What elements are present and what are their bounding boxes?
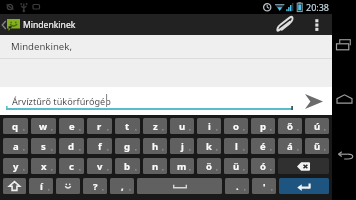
button[interactable]: ú	[305, 118, 329, 134]
staticText: z	[153, 120, 158, 133]
staticText: ?	[93, 180, 98, 193]
button[interactable]	[56, 178, 80, 194]
staticText: v	[97, 160, 103, 173]
button[interactable]: g	[115, 138, 140, 154]
button[interactable]: q	[3, 118, 28, 134]
button[interactable]: v	[87, 158, 112, 174]
button[interactable]: Back	[333, 144, 355, 166]
button[interactable]: .	[225, 178, 249, 194]
button[interactable]: í	[29, 178, 53, 194]
button[interactable]: c	[59, 158, 84, 174]
staticText: é	[260, 140, 266, 153]
staticText: y	[13, 160, 19, 173]
staticText: c	[69, 160, 74, 173]
button[interactable]: t	[115, 118, 140, 134]
button[interactable]: '	[252, 178, 276, 194]
staticText: q	[12, 120, 19, 133]
staticText: w	[39, 120, 48, 133]
button[interactable]: m	[170, 158, 194, 174]
button[interactable]: k	[197, 138, 221, 154]
staticText: ú	[314, 120, 321, 133]
staticText: f	[98, 140, 102, 153]
staticText: '	[263, 180, 266, 193]
button[interactable]: s	[31, 138, 56, 154]
button[interactable]	[137, 178, 222, 194]
button[interactable]: ,	[110, 178, 134, 194]
button[interactable]	[3, 178, 26, 194]
button[interactable]: e	[59, 118, 84, 134]
staticText: t	[125, 120, 130, 133]
staticText: .	[236, 180, 239, 193]
staticText: ,	[121, 180, 124, 193]
staticText: ü	[233, 160, 240, 173]
staticText: á	[287, 140, 293, 153]
staticText: 20:38	[306, 1, 330, 13]
button[interactable]: ó	[251, 158, 275, 174]
button[interactable]	[279, 178, 329, 194]
staticText: h	[152, 140, 159, 153]
staticText: r	[97, 120, 102, 133]
button[interactable]: a	[3, 138, 28, 154]
button[interactable]: h	[143, 138, 167, 154]
button[interactable]: j	[170, 138, 194, 154]
staticText: Mindenkinek	[23, 19, 76, 31]
staticText: ű	[314, 140, 321, 153]
button[interactable]: r	[87, 118, 112, 134]
button[interactable]: ű	[305, 138, 329, 154]
staticText: b	[124, 160, 131, 173]
staticText: u	[179, 120, 186, 133]
staticText: l	[235, 140, 238, 153]
staticText: e	[69, 120, 75, 133]
button[interactable]: w	[31, 118, 56, 134]
button[interactable]: o	[224, 118, 248, 134]
button[interactable]: Recent apps	[333, 34, 355, 56]
staticText: í	[40, 180, 43, 193]
button[interactable]: d	[59, 138, 84, 154]
button[interactable]: b	[115, 158, 140, 174]
button[interactable]: Home	[333, 88, 355, 110]
staticText: Árvíztűrő tükörfúrógép	[12, 95, 111, 107]
staticText: x	[41, 160, 47, 173]
staticText: Mindenkinek,	[11, 40, 72, 53]
button[interactable]: i	[197, 118, 221, 134]
staticText: s	[41, 140, 46, 153]
button[interactable]: More options	[301, 14, 332, 35]
staticText: m	[177, 160, 187, 173]
button[interactable]: y	[3, 158, 28, 174]
button[interactable]: ü	[224, 158, 248, 174]
staticText: k	[206, 140, 212, 153]
button[interactable]: á	[278, 138, 302, 154]
staticText: ö	[206, 160, 212, 173]
button[interactable]: x	[31, 158, 56, 174]
staticText: ó	[260, 160, 266, 173]
staticText: n	[152, 160, 159, 173]
staticText: g	[124, 140, 131, 153]
button[interactable]: Mindenkinek	[0, 14, 82, 35]
button[interactable]: l	[224, 138, 248, 154]
staticText: ő	[287, 120, 293, 133]
staticText: j	[181, 140, 184, 153]
button[interactable]: ő	[278, 118, 302, 134]
staticText: p	[260, 120, 267, 133]
staticText: a	[13, 140, 19, 153]
button[interactable]: ?	[83, 178, 107, 194]
button[interactable]: é	[251, 138, 275, 154]
button[interactable]: Send	[301, 88, 327, 114]
button[interactable]: f	[87, 138, 112, 154]
button[interactable]: p	[251, 118, 275, 134]
button[interactable]: u	[170, 118, 194, 134]
button[interactable]: z	[143, 118, 167, 134]
button[interactable]: Attach	[267, 14, 301, 35]
staticText: d	[68, 140, 75, 153]
staticText: i	[208, 120, 211, 133]
button[interactable]: Mindenkinek,	[0, 35, 332, 58]
button[interactable]: ö	[197, 158, 221, 174]
staticText: o	[233, 120, 239, 133]
button[interactable]: n	[143, 158, 167, 174]
button[interactable]	[278, 158, 329, 174]
